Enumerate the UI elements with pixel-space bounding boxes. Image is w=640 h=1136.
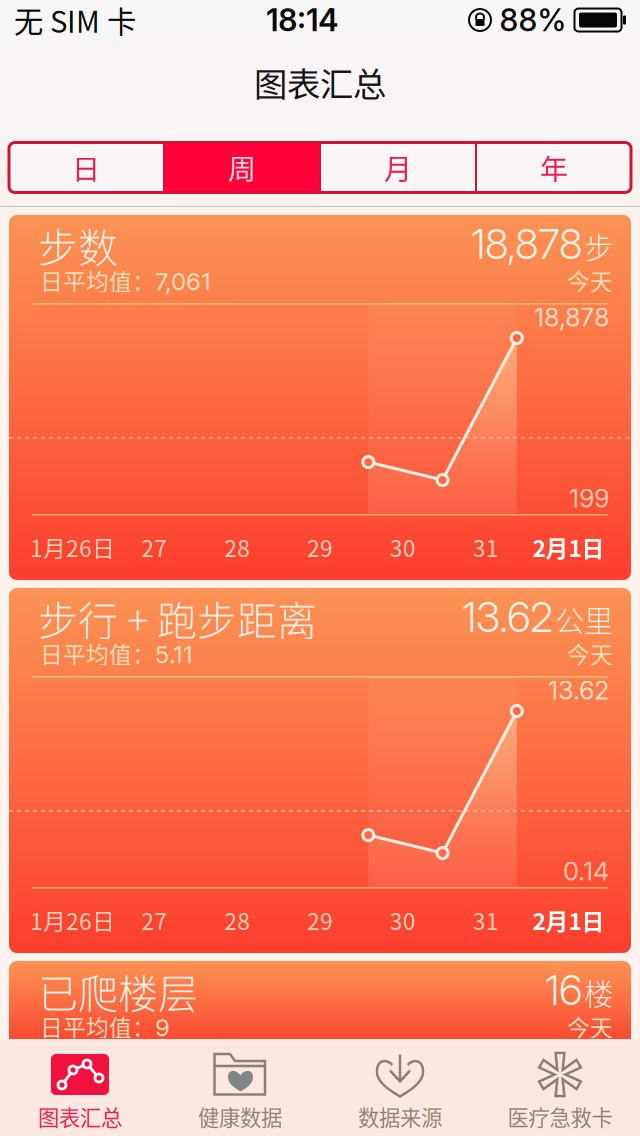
staticText: 今天 (567, 637, 613, 670)
staticText: 步行 + 跑步距离 (38, 589, 317, 647)
staticText: 88% (499, 1, 566, 38)
button[interactable]: 月 (321, 142, 475, 192)
staticText: 30 (390, 904, 416, 936)
staticText: 日平均值： (40, 1010, 155, 1043)
staticText: 31 (473, 904, 499, 936)
button[interactable]: 已爬楼层 (9, 961, 631, 1049)
staticText: 27 (141, 904, 167, 936)
staticText: 7,061 (155, 267, 211, 296)
staticText: 楼 (584, 971, 613, 1013)
staticText: 5.11 (155, 640, 193, 669)
staticText: 日 (72, 147, 100, 188)
staticText: 图表汇总 (38, 1101, 122, 1132)
button[interactable]: 周 (165, 142, 319, 192)
button[interactable]: 图表汇总 (0, 1052, 160, 1132)
staticText: 年 (540, 147, 568, 188)
staticText: 月 (384, 147, 412, 188)
staticText: 数据来源 (358, 1101, 442, 1132)
staticText: 今天 (567, 264, 613, 297)
staticText: 199 (569, 483, 609, 514)
staticText: 今天 (567, 1010, 613, 1043)
staticText: 已爬楼层 (38, 962, 198, 1020)
staticText: 公里 (555, 598, 613, 640)
button[interactable]: 步行 + 跑步距离 (9, 588, 631, 953)
staticText: 13.62 (548, 675, 609, 706)
button[interactable]: 日 (9, 142, 163, 192)
staticText: 图表汇总 (254, 58, 386, 106)
staticText: 28 (224, 904, 250, 936)
staticText: 无 SIM 卡 (14, 0, 136, 41)
staticText: 步 (584, 225, 613, 267)
button[interactable]: 健康数据 (160, 1052, 320, 1132)
staticText: 29 (307, 531, 333, 563)
staticText: 18:14 (266, 1, 338, 38)
staticText: 步数 (38, 216, 118, 274)
staticText: 18,878 (471, 219, 582, 269)
staticText: 18,878 (534, 302, 609, 333)
button[interactable]: 数据来源 (320, 1052, 480, 1132)
staticText: 31 (473, 531, 499, 563)
staticText: 30 (390, 531, 416, 563)
staticText: 13.62 (462, 592, 553, 642)
staticText: 日平均值： (40, 264, 155, 297)
button[interactable]: 年 (477, 142, 631, 192)
button[interactable]: 医疗急救卡 (480, 1052, 640, 1132)
staticText: 1月26日 (30, 904, 115, 936)
staticText: 29 (307, 904, 333, 936)
staticText: 2月1日 (533, 904, 605, 936)
staticText: 27 (141, 531, 167, 563)
staticText: 0.14 (563, 856, 609, 887)
staticText: 医疗急救卡 (507, 1101, 612, 1132)
staticText: 2月1日 (533, 531, 605, 563)
staticText: 16 (545, 965, 582, 1015)
staticText: 健康数据 (198, 1101, 282, 1132)
button[interactable]: 步数 (9, 215, 631, 580)
staticText: 周 (228, 147, 256, 188)
staticText: 1月26日 (30, 531, 115, 563)
staticText: 9 (155, 1013, 170, 1042)
staticText: 日平均值： (40, 637, 155, 670)
staticText: 28 (224, 531, 250, 563)
